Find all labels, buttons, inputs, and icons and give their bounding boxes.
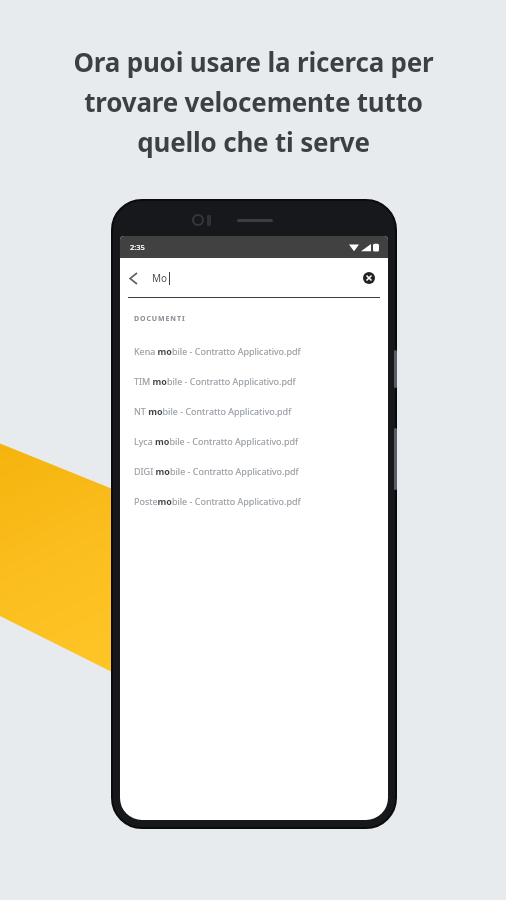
button[interactable]: NT mobile - Contratto Applicativo.pdf xyxy=(120,396,388,426)
staticText: DIGI mobile - Contratto Applicativo.pdf xyxy=(134,465,299,477)
button[interactable]: Lyca mobile - Contratto Applicativo.pdf xyxy=(120,426,388,456)
staticText: NT mobile - Contratto Applicativo.pdf xyxy=(134,405,292,417)
staticText: Kena mobile - Contratto Applicativo.pdf xyxy=(134,345,301,357)
button[interactable]: Postemobile - Contratto Applicativo.pdf xyxy=(120,486,388,516)
button[interactable]: DIGI mobile - Contratto Applicativo.pdf xyxy=(120,456,388,486)
staticText: quello che ti serve xyxy=(137,124,370,159)
staticText: TIM mobile - Contratto Applicativo.pdf xyxy=(134,375,296,387)
staticText: trovare velocemente tutto xyxy=(84,84,423,119)
staticText: Lyca mobile - Contratto Applicativo.pdf xyxy=(134,435,299,447)
staticText: Mo xyxy=(152,271,168,285)
staticText: DOCUMENTI xyxy=(134,314,186,324)
staticText: Ora puoi usare la ricerca per xyxy=(73,44,434,79)
button[interactable]: Clear search xyxy=(356,265,382,291)
staticText: Postemobile - Contratto Applicativo.pdf xyxy=(134,495,301,507)
button[interactable]: Kena mobile - Contratto Applicativo.pdf xyxy=(120,336,388,366)
staticText: 2:35 xyxy=(130,242,145,252)
button[interactable]: Back xyxy=(120,265,146,291)
button[interactable]: TIM mobile - Contratto Applicativo.pdf xyxy=(120,366,388,396)
